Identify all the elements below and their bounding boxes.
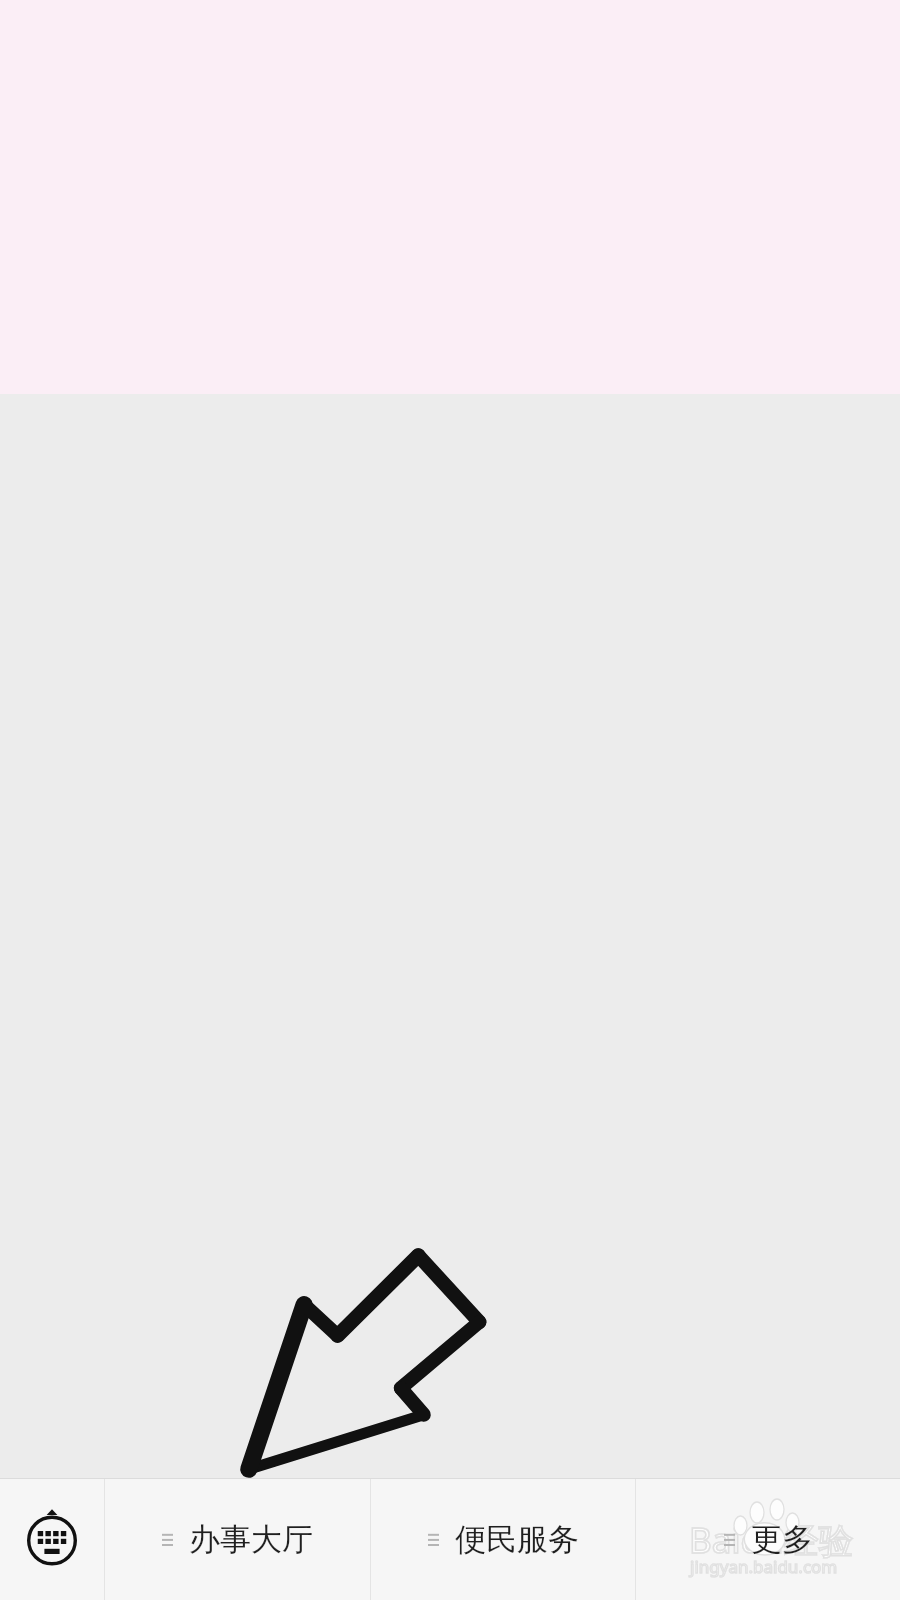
staticText: jingyan.baidu.com: [690, 1555, 838, 1578]
button[interactable]: 更多: [636, 1479, 900, 1600]
staticText: jingyan.baidu.com: [690, 1555, 838, 1578]
staticText: Baidu经验: [689, 1516, 854, 1564]
button[interactable]: 办事大厅: [105, 1479, 370, 1600]
staticText: 便民服务: [455, 1520, 579, 1559]
staticText: 办事大厅: [189, 1520, 313, 1559]
button[interactable]: 便民服务: [371, 1479, 635, 1600]
staticText: Baidu经验: [689, 1516, 854, 1564]
staticText: 更多: [751, 1520, 813, 1559]
button[interactable]: Show keyboard: [0, 1479, 104, 1600]
